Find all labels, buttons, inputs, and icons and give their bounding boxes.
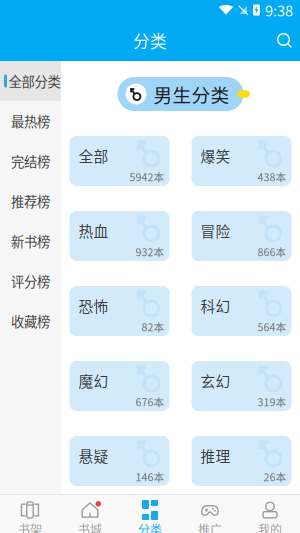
button[interactable]: 评分榜 [0,261,61,301]
button[interactable]: 悬疑 [69,436,169,486]
staticText: 恐怖 [78,295,108,316]
button[interactable]: 最热榜 [0,101,61,141]
button[interactable]: 热血 [69,211,169,261]
button[interactable]: 恐怖 [69,286,169,336]
staticText: 146本 [135,469,164,484]
staticText: 玄幻 [200,370,230,391]
staticText: 热血 [78,220,108,241]
staticText: 我的 [258,520,282,533]
staticText: 男生分类 [153,80,229,107]
staticText: 26本 [263,469,286,484]
button[interactable]: 冒险 [191,211,291,261]
staticText: 推广 [198,520,222,533]
button[interactable]: 完结榜 [0,141,61,181]
button[interactable]: 爆笑 [191,136,291,186]
staticText: 完结榜 [11,151,50,171]
staticText: 悬疑 [78,445,108,466]
staticText: 676本 [135,394,164,409]
staticText: 866本 [257,244,286,259]
button[interactable]: 全部 [69,136,169,186]
button[interactable]: 收藏榜 [0,301,61,341]
staticText: 爆笑 [200,145,230,166]
staticText: 438本 [257,169,286,184]
staticText: 魔幻 [78,370,108,391]
staticText: 分类 [133,28,167,52]
button[interactable]: Search [266,26,300,55]
staticText: 书架 [18,520,42,533]
staticText: 科幻 [200,295,230,316]
button[interactable]: 推理 [191,436,291,486]
staticText: 冒险 [200,220,230,241]
staticText: 564本 [257,319,286,334]
staticText: 新书榜 [11,231,50,251]
staticText: 推理 [200,445,230,466]
button[interactable]: 分类 [120,493,180,533]
button[interactable]: 全部分类 [0,61,61,101]
button[interactable]: 魔幻 [69,361,169,411]
staticText: 评分榜 [11,271,50,291]
button[interactable]: 书城 [60,493,120,533]
staticText: 全部分类 [8,71,60,91]
staticText: 82本 [141,319,164,334]
staticText: 9:38 [265,0,293,21]
staticText: 5942本 [129,169,164,184]
button[interactable]: 书架 [0,493,60,533]
staticText: 319本 [257,394,286,409]
staticText: 收藏榜 [11,311,50,331]
staticText: 推荐榜 [11,191,50,211]
staticText: 932本 [135,244,164,259]
button[interactable]: 推广 [180,493,240,533]
button[interactable]: 科幻 [191,286,291,336]
button[interactable]: 新书榜 [0,221,61,261]
staticText: 分类 [138,520,162,533]
button[interactable]: 我的 [240,493,300,533]
staticText: 全部 [78,145,108,166]
button[interactable]: 推荐榜 [0,181,61,221]
button[interactable]: 玄幻 [191,361,291,411]
staticText: 最热榜 [11,111,50,131]
staticText: 书城 [78,520,102,533]
